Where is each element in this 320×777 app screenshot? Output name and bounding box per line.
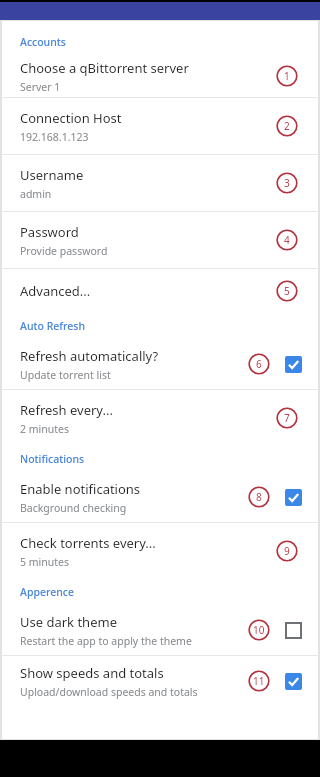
button[interactable]: Use dark theme xyxy=(2,605,318,655)
staticText: Connection Host xyxy=(20,109,122,127)
staticText: Enable notifications xyxy=(20,480,141,498)
staticText: Check torrents every... xyxy=(20,534,156,552)
staticText: 11 xyxy=(253,674,265,688)
button[interactable]: Advanced... xyxy=(2,269,318,313)
button[interactable]: Choose a qBittorrent server xyxy=(2,55,318,97)
staticText: 9 xyxy=(284,544,290,558)
staticText: admin xyxy=(20,187,52,201)
button[interactable]: Check torrents every... xyxy=(2,523,318,579)
staticText: Password xyxy=(20,223,79,241)
staticText: Accounts xyxy=(20,35,66,49)
staticText: Background checking xyxy=(20,501,127,515)
staticText: 7 xyxy=(284,411,290,425)
button[interactable]: Show speeds and totals xyxy=(282,670,304,692)
staticText: Username xyxy=(20,166,84,184)
staticText: Refresh every... xyxy=(20,401,113,419)
staticText: Show speeds and totals xyxy=(20,664,164,682)
staticText: Apperence xyxy=(20,585,74,599)
staticText: Server 1 xyxy=(20,80,61,94)
staticText: 8 xyxy=(256,490,262,504)
staticText: 5 minutes xyxy=(20,555,69,569)
staticText: Refresh automatically? xyxy=(20,347,159,365)
button[interactable]: Enable notifications xyxy=(2,472,318,522)
staticText: 4 xyxy=(284,233,290,247)
button[interactable]: Show speeds and totals xyxy=(2,656,318,706)
button[interactable]: Enable notifications xyxy=(282,486,304,508)
staticText: 5 xyxy=(284,284,290,298)
button[interactable]: Password xyxy=(2,212,318,268)
staticText: 2 minutes xyxy=(20,422,69,436)
staticText: 6 xyxy=(256,357,262,371)
button[interactable]: Refresh every... xyxy=(2,390,318,446)
button[interactable]: Username xyxy=(2,155,318,211)
staticText: 1 xyxy=(284,69,290,83)
button[interactable]: Refresh automatically? xyxy=(282,353,304,375)
staticText: Choose a qBittorrent server xyxy=(20,59,189,77)
staticText: 2 xyxy=(284,119,290,133)
button[interactable]: Use dark theme xyxy=(282,619,304,641)
button[interactable]: Connection Host xyxy=(2,98,318,154)
staticText: Restart the app to apply the theme xyxy=(20,634,192,648)
button[interactable]: Refresh automatically? xyxy=(2,339,318,389)
staticText: 192.168.1.123 xyxy=(20,130,89,144)
staticText: Provide password xyxy=(20,244,108,258)
staticText: Use dark theme xyxy=(20,613,117,631)
staticText: Advanced... xyxy=(20,282,91,300)
staticText: Auto Refresh xyxy=(20,319,85,333)
staticText: Update torrent list xyxy=(20,368,111,382)
staticText: Upload/download speeds and totals xyxy=(20,685,198,699)
staticText: 3 xyxy=(284,176,290,190)
staticText: Notifications xyxy=(20,452,85,466)
staticText: 10 xyxy=(253,623,265,637)
